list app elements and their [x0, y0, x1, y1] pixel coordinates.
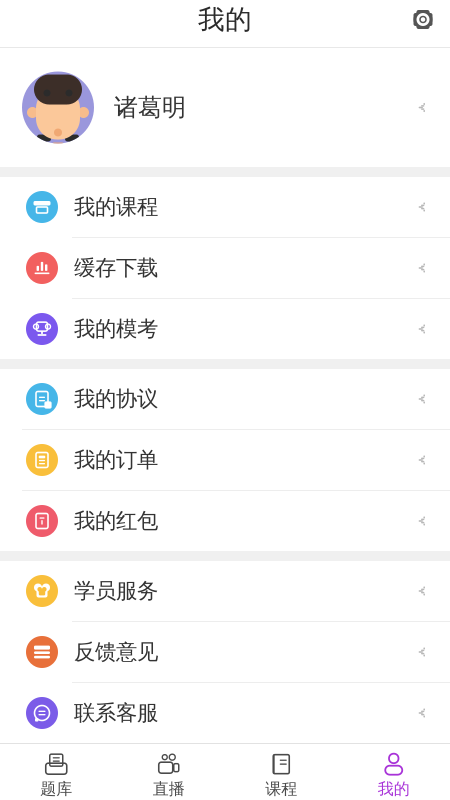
- button[interactable]: 我的订单: [0, 430, 450, 490]
- staticText: 我的: [198, 3, 252, 36]
- staticText: 课程: [265, 779, 297, 799]
- staticText: 反馈意见: [74, 639, 158, 665]
- button[interactable]: 我的模考: [0, 299, 450, 359]
- button[interactable]: 题库: [0, 744, 112, 800]
- button[interactable]: 我的: [337, 744, 450, 800]
- staticText: 缓存下载: [74, 255, 158, 281]
- button[interactable]: 学员服务: [0, 561, 450, 621]
- button[interactable]: 缓存下载: [0, 238, 450, 298]
- button[interactable]: 联系客服: [0, 683, 450, 743]
- staticText: 诸葛明: [114, 93, 186, 122]
- staticText: 直播: [153, 779, 185, 799]
- staticText: 我的模考: [74, 316, 158, 342]
- button[interactable]: 我的红包: [0, 491, 450, 551]
- staticText: 我的课程: [74, 194, 158, 220]
- staticText: 我的协议: [74, 386, 158, 412]
- button[interactable]: Settings: [396, 0, 450, 46]
- staticText: 题库: [40, 779, 72, 799]
- staticText: 我的订单: [74, 447, 158, 473]
- staticText: 学员服务: [74, 578, 158, 604]
- button[interactable]: 我的课程: [0, 177, 450, 237]
- button[interactable]: 课程: [225, 744, 337, 800]
- staticText: 我的红包: [74, 508, 158, 534]
- button[interactable]: 直播: [112, 744, 225, 800]
- button[interactable]: 反馈意见: [0, 622, 450, 682]
- button[interactable]: 我的协议: [0, 369, 450, 429]
- button[interactable]: 诸葛明: [0, 48, 450, 167]
- staticText: 联系客服: [74, 700, 158, 726]
- staticText: 我的: [378, 779, 410, 799]
